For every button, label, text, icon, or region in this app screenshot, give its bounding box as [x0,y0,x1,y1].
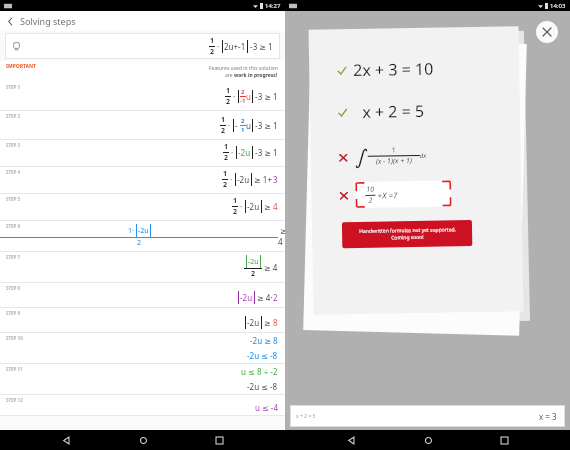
staticText: are work in progress! [225,72,278,79]
staticText: Handwritten formulas not yet supported. [359,226,456,235]
staticText: 2 [221,126,226,136]
button[interactable]: Home [133,430,153,450]
staticText: Solving steps [20,15,76,27]
button[interactable]: STEP 2 [0,111,285,140]
staticText: -2u [247,317,260,328]
staticText: STEP 7 [6,254,21,260]
staticText: STEP 10 [6,335,23,341]
staticText: STEP 2 [6,113,21,119]
staticText: 2 [273,292,278,303]
staticText: -2u [237,174,250,185]
staticText: · [238,201,245,212]
button[interactable]: STEP 10 [0,333,285,364]
staticText: u [246,120,251,131]
staticText: 8 ÷ -2 [257,366,278,377]
staticText: -2u [247,201,260,212]
staticText: -2u [238,147,251,158]
staticText: · [228,174,235,185]
staticText: u [246,91,251,102]
button[interactable]: STEP 12 [0,395,285,416]
staticText: 2 [224,153,229,163]
staticText: 1 [221,115,226,125]
staticText: STEP 11 [6,366,23,372]
staticText: 2 [223,180,228,190]
staticText: 14:27 [265,2,281,10]
staticText: 2 [233,207,238,217]
staticText: IMPORTANT [6,63,36,70]
button[interactable]: STEP 9 [0,308,285,333]
staticText: -2u [138,226,149,236]
staticText: STEP 6 [6,223,21,229]
button[interactable]: STEP 8 [0,283,285,308]
button[interactable]: STEP 6 [0,221,285,252]
button[interactable]: x + 2 = 5 [290,405,565,427]
staticText: Coming soon! [391,234,424,241]
staticText: 2 [137,238,142,248]
staticText: 8 [273,317,278,328]
button[interactable]: STEP 7 [0,252,285,283]
staticText: u ≤ -4 [255,402,278,413]
staticText: -3 ≥ 1 [248,41,273,52]
staticText: ≥ 4· [255,292,273,303]
staticText: 1 [226,86,231,96]
staticText: 2 [368,196,373,206]
staticText: 3 [273,174,278,185]
staticText: u ≤ [241,366,257,377]
staticText: Features used in this solution [209,65,278,72]
button[interactable]: STEP 4 [0,167,285,194]
staticText: 2 [210,47,215,57]
staticText: · [231,91,238,102]
button[interactable]: Close [536,21,558,43]
staticText: STEP 9 [6,310,21,316]
staticText: -2u [240,292,253,303]
button[interactable]: STEP 11 [0,364,285,395]
button[interactable]: 1 [5,33,280,59]
staticText: x + 2 = 5 [296,413,316,420]
button[interactable]: Recents [494,430,514,450]
staticText: ≥ [262,317,273,328]
staticText: · [226,120,233,131]
button[interactable]: Home [418,430,438,450]
staticText: -1 [240,97,246,105]
staticText: STEP 5 [6,196,21,202]
staticText: (x − 1)(x + 1) [376,156,413,167]
staticText: -3 ≥ 1 [253,91,278,102]
staticText: 2u+-1 [224,41,246,52]
staticText: ≥ [262,201,273,212]
staticText: ∫ [354,145,366,168]
button[interactable]: STEP 1 [0,82,285,111]
staticText: 10 [366,185,374,195]
staticText: 2 [241,88,245,96]
staticText: 1 [392,145,397,155]
button[interactable]: Recents [209,430,229,450]
staticText: STEP 3 [6,142,21,148]
staticText: 1 [241,126,245,134]
staticText: 2 [226,97,231,107]
staticText: 1 [223,169,228,179]
staticText: STEP 12 [6,397,23,403]
staticText: ≥ 1+ [252,174,273,185]
button[interactable]: Back [341,430,361,450]
staticText: x = 3 [539,411,557,422]
staticText: 1 [210,36,215,46]
button[interactable]: STEP 5 [0,194,285,221]
staticText: -2u [248,257,259,267]
staticText: -3 ≥ 1 [253,120,278,131]
staticText: dx [420,152,427,160]
staticText: +X =7 [375,189,397,201]
staticText: 2 [241,117,245,125]
staticText: 1 [233,196,238,206]
button[interactable]: Back [56,430,76,450]
staticText: STEP 4 [6,169,21,175]
staticText: - [235,120,240,131]
staticText: STEP 8 [6,285,21,291]
staticText: 14:03 [550,2,566,10]
staticText: · [229,147,236,158]
staticText: 1· [128,226,136,236]
staticText: STEP 1 [6,84,21,90]
staticText: 2 [251,269,256,279]
button[interactable]: Navigate up [0,11,20,31]
button[interactable]: STEP 3 [0,140,285,167]
staticText: 2x + 3 = 10 [353,58,434,81]
staticText: -2u ≤ -8 [247,381,278,392]
